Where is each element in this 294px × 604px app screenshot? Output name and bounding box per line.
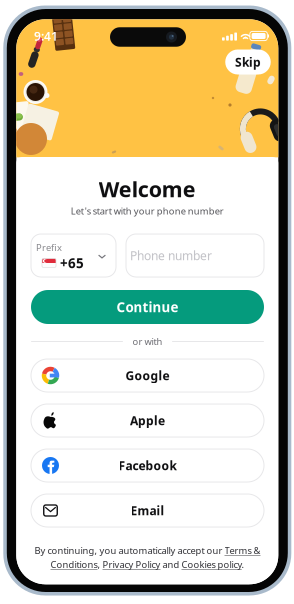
staticText: Welcome xyxy=(99,175,196,203)
button[interactable]: Email xyxy=(31,494,264,527)
staticText: Apple xyxy=(130,412,165,428)
staticText: or with xyxy=(132,335,162,348)
staticText: By continuing, you automatically accept … xyxy=(34,544,260,557)
button[interactable]: Phone number xyxy=(126,234,264,277)
staticText: Let's start with your phone number xyxy=(71,205,224,217)
staticText: Facebook xyxy=(118,457,176,473)
staticText: Phone number xyxy=(130,247,212,263)
staticText: Conditions, Privacy Policy and Cookies p… xyxy=(50,558,244,571)
button[interactable]: Facebook xyxy=(31,449,264,482)
button[interactable]: Skip xyxy=(225,49,271,74)
staticText: +65 xyxy=(60,254,84,272)
staticText: Google xyxy=(125,367,169,383)
button[interactable]: Continue xyxy=(31,290,264,324)
staticText: Skip xyxy=(235,54,261,70)
button[interactable]: Apple xyxy=(31,404,264,437)
staticText: Email xyxy=(130,502,164,518)
staticText: Prefix xyxy=(36,241,62,254)
button[interactable]: Prefix xyxy=(31,234,116,277)
staticText: 9:41 xyxy=(34,28,58,44)
button[interactable]: Google xyxy=(31,359,264,392)
staticText: Continue xyxy=(116,298,178,316)
